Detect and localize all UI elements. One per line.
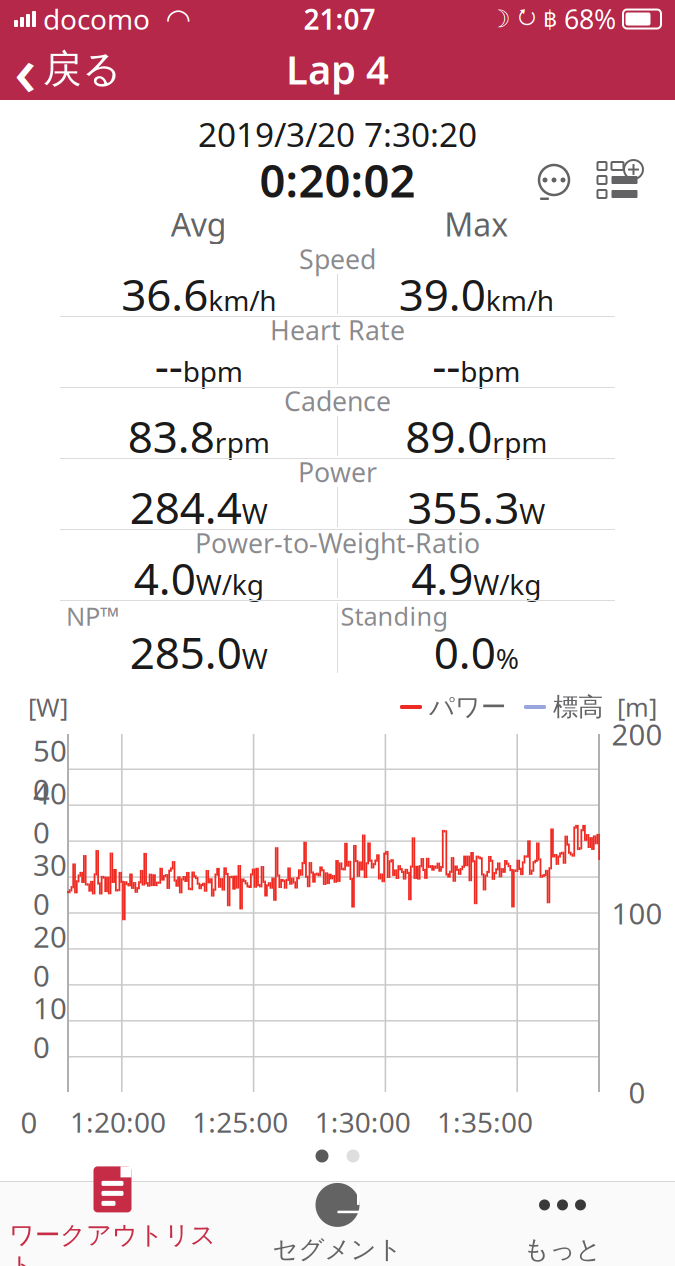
staticText: W xyxy=(242,495,268,532)
staticText: ⭮ xyxy=(518,1,536,37)
staticText: 0:20:02 xyxy=(259,150,415,210)
staticText: 300 xyxy=(33,845,67,923)
staticText: W xyxy=(242,640,268,677)
staticText: 100 xyxy=(611,893,662,932)
staticText: Heart Rate xyxy=(270,312,405,348)
staticText: km/h xyxy=(208,282,276,319)
staticText: 1:35:00 xyxy=(437,1103,533,1141)
staticText: W/kg xyxy=(473,566,541,603)
button[interactable]: Add to list xyxy=(587,154,653,206)
staticText: 200 xyxy=(611,714,662,753)
staticText: Cadence xyxy=(284,383,391,419)
staticText: Lap 4 xyxy=(286,42,389,95)
staticText: 36.6 xyxy=(121,265,208,323)
staticText: 戻る xyxy=(43,45,122,93)
staticText: ☽ xyxy=(489,5,511,33)
staticText: Power-to-Weight-Ratio xyxy=(195,525,480,561)
staticText: 39.0 xyxy=(399,265,486,323)
staticText: 21:07 xyxy=(303,0,375,38)
button[interactable]: Comments xyxy=(521,154,587,206)
staticText: ‹ xyxy=(14,23,37,115)
staticText: rpm xyxy=(492,424,547,461)
staticText: 0 xyxy=(628,1072,645,1111)
staticText: 400 xyxy=(33,774,67,851)
staticText: 285.0 xyxy=(130,623,242,681)
staticText: W/kg xyxy=(196,566,264,603)
staticText: 4.0 xyxy=(134,549,196,607)
staticText: Max xyxy=(444,203,508,245)
staticText: 83.8 xyxy=(128,407,215,465)
staticText: km/h xyxy=(486,282,554,319)
staticText: NP™ xyxy=(66,599,120,633)
staticText: 200 xyxy=(33,917,67,995)
staticText: Power xyxy=(298,454,377,490)
staticText: Avg xyxy=(171,203,227,245)
button[interactable]: セグメント xyxy=(225,1182,450,1266)
staticText: Standing xyxy=(340,599,448,633)
button[interactable]: ‹ xyxy=(0,41,136,97)
staticText: 500 xyxy=(33,731,67,809)
staticText: 1:25:00 xyxy=(192,1103,288,1141)
staticText: 284.4 xyxy=(130,478,242,536)
staticText: 355.3 xyxy=(407,478,519,536)
staticText: 89.0 xyxy=(405,407,492,465)
staticText: 4.9 xyxy=(411,549,473,607)
staticText: rpm xyxy=(215,424,270,461)
staticText: [m] xyxy=(617,690,657,724)
staticText: Speed xyxy=(299,241,376,277)
staticText: bpm xyxy=(460,353,520,390)
button[interactable]: ワークアウトリスト xyxy=(0,1182,225,1266)
staticText: -- xyxy=(155,336,183,394)
staticText: docomo xyxy=(43,0,150,38)
staticText: もっと xyxy=(523,1234,601,1265)
staticText: [W] xyxy=(28,690,68,724)
staticText: 2019/3/20 7:30:20 xyxy=(198,112,477,156)
staticText: ◠ xyxy=(167,2,190,36)
staticText: -- xyxy=(432,336,460,394)
staticText: ワークアウトリスト xyxy=(9,1219,216,1266)
staticText: 100 xyxy=(33,988,67,1066)
staticText: 1:20:00 xyxy=(70,1103,166,1141)
staticText: 0.0 xyxy=(434,623,496,681)
button[interactable]: もっと xyxy=(450,1182,675,1266)
staticText: 標高 xyxy=(553,691,603,722)
staticText: % xyxy=(496,640,519,677)
staticText: 0 xyxy=(20,1102,37,1141)
staticText: W xyxy=(519,495,545,532)
staticText: 68% xyxy=(564,1,616,37)
staticText: パワー xyxy=(429,691,506,722)
staticText: 1:30:00 xyxy=(315,1103,411,1141)
staticText: セグメント xyxy=(272,1234,402,1265)
staticText: bpm xyxy=(183,353,243,390)
staticText: ฿ xyxy=(543,6,557,32)
